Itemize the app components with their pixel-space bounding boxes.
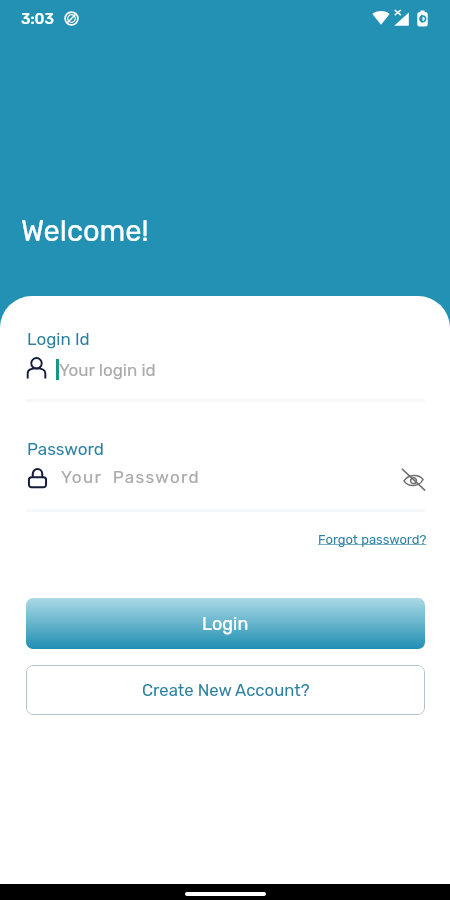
staticText: Create New Account? [142,680,310,700]
staticText: Login Id [27,329,90,349]
button[interactable]: Forgot password? [318,532,427,547]
button[interactable]: Password [26,436,425,512]
staticText: 3:03 [21,10,54,28]
staticText: Your login id [59,360,156,380]
button[interactable]: Login [26,598,425,649]
button[interactable]: Create New Account? [26,665,425,715]
button[interactable]: Login Id [26,326,425,402]
staticText: Forgot password? [318,532,427,547]
staticText: Your Password [61,467,200,487]
button[interactable]: Show password [399,465,427,493]
staticText: Password [27,439,104,459]
staticText: Login [202,613,249,634]
staticText: Welcome! [21,214,149,248]
